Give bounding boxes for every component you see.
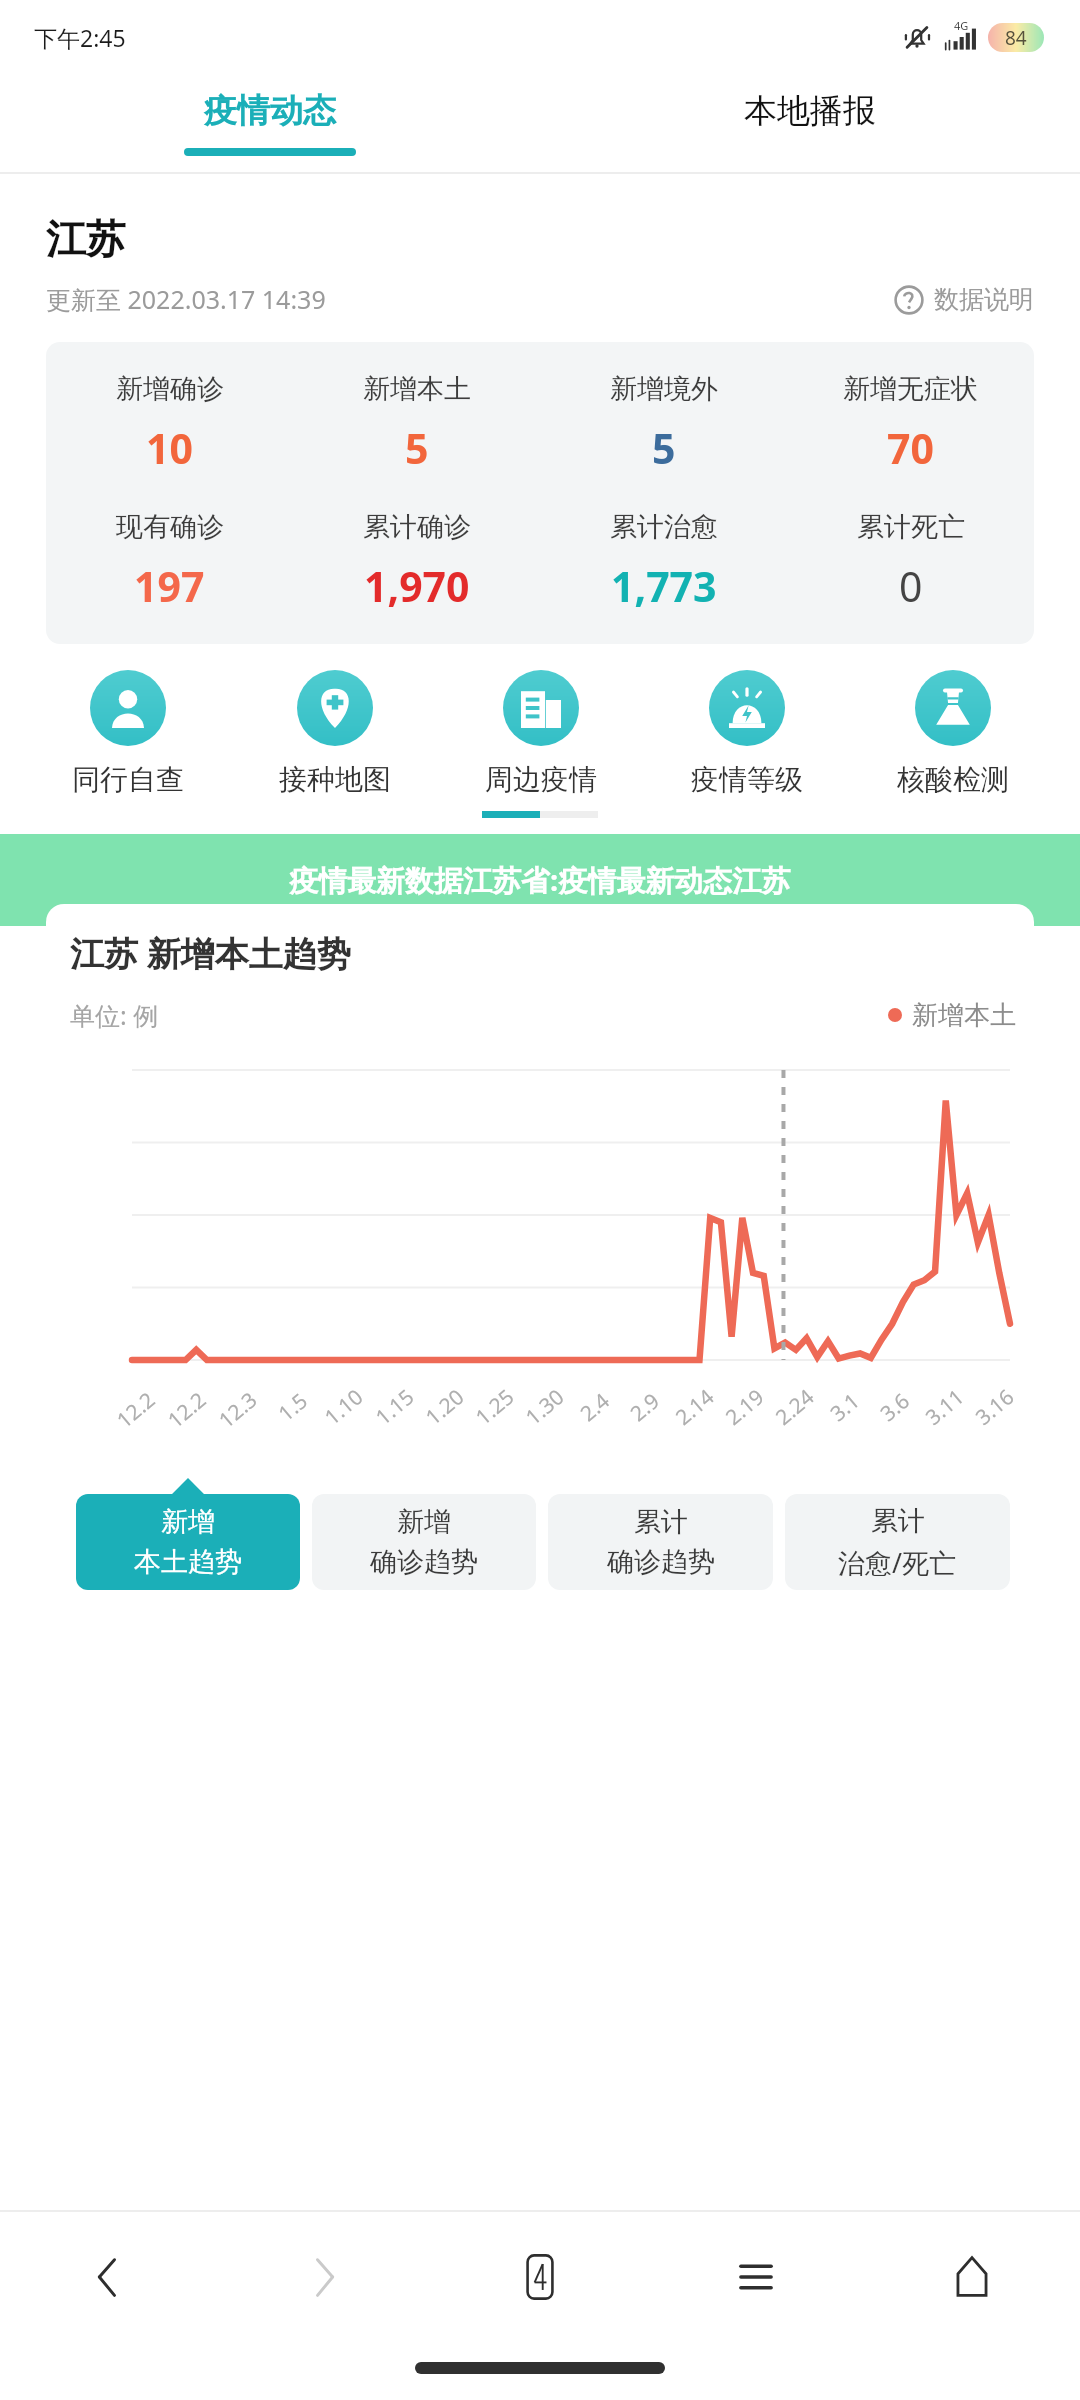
button[interactable]: 新增确诊 — [46, 372, 293, 476]
staticText: 核酸检测 — [897, 762, 1009, 797]
staticText: 下午2:45 — [34, 22, 126, 53]
staticText: 197 — [134, 558, 205, 614]
staticText: 累计治愈 — [610, 510, 718, 544]
staticText: 数据说明 — [934, 284, 1034, 315]
staticText: 确诊趋势 — [607, 1545, 715, 1579]
staticText: 1.20 — [419, 1382, 470, 1432]
button[interactable]: Menu — [648, 2212, 864, 2342]
staticText: 1.10 — [318, 1382, 369, 1432]
staticText: 新增本土 — [363, 372, 471, 406]
staticText: 4G — [954, 18, 969, 33]
staticText: 新增本土 — [912, 999, 1016, 1032]
staticText: 3.16 — [969, 1382, 1020, 1432]
staticText: 3.1 — [824, 1386, 866, 1428]
staticText: 新增无症状 — [843, 372, 978, 406]
staticText: 0 — [899, 558, 923, 614]
button[interactable]: 累计 — [548, 1494, 773, 1590]
button[interactable]: 新增 — [312, 1494, 536, 1590]
staticText: 1,970 — [364, 558, 470, 614]
staticText: 10 — [146, 420, 193, 476]
button[interactable]: 累计确诊 — [293, 510, 540, 614]
staticText: 现有确诊 — [116, 510, 224, 544]
staticText: 确诊趋势 — [370, 1545, 478, 1579]
button[interactable]: Forward — [216, 2212, 432, 2342]
staticText: 12.21 — [110, 1380, 168, 1435]
staticText: 3.11 — [919, 1382, 970, 1432]
staticText: 2.19 — [719, 1382, 770, 1432]
staticText: 新增 — [397, 1505, 451, 1539]
staticText: 1.15 — [369, 1382, 420, 1432]
staticText: 江苏 新增本土趋势 — [70, 930, 351, 976]
staticText: 累计 — [634, 1505, 688, 1539]
button[interactable]: 现有确诊 — [46, 510, 293, 614]
staticText: 2.4 — [574, 1386, 616, 1428]
staticText: 新增确诊 — [116, 372, 224, 406]
button[interactable]: 新增本土 — [293, 372, 540, 476]
staticText: 12.31 — [212, 1380, 270, 1435]
staticText: 2.9 — [624, 1386, 666, 1428]
staticText: 新增境外 — [610, 372, 718, 406]
staticText: 1.25 — [469, 1382, 520, 1432]
staticText: 84 — [1005, 25, 1027, 51]
button[interactable]: 疫情动态 — [0, 74, 540, 172]
staticText: 5 — [405, 420, 429, 476]
button[interactable]: 核酸检测 — [850, 670, 1056, 797]
staticText: 接种地图 — [279, 762, 391, 797]
staticText: 同行自查 — [72, 762, 184, 797]
button[interactable]: 新增 — [76, 1494, 300, 1590]
button[interactable]: Tabs — [432, 2212, 648, 2342]
button[interactable]: 本地播报 — [540, 74, 1080, 172]
staticText: 1.5 — [272, 1386, 314, 1428]
staticText: 累计 — [871, 1504, 925, 1538]
staticText: 周边疫情 — [485, 762, 597, 797]
staticText: 70 — [887, 420, 934, 476]
button[interactable]: 疫情等级 — [644, 670, 850, 797]
button[interactable]: 新增境外 — [540, 372, 787, 476]
staticText: 江苏 — [46, 214, 126, 264]
button[interactable]: 累计治愈 — [540, 510, 787, 614]
staticText: 本地播报 — [744, 90, 876, 132]
staticText: 3.6 — [874, 1386, 916, 1428]
staticText: 2.14 — [669, 1382, 720, 1432]
button[interactable]: 累计死亡 — [787, 510, 1034, 614]
staticText: 疫情动态 — [204, 90, 336, 132]
button[interactable]: 新增无症状 — [787, 372, 1034, 476]
staticText: 本土趋势 — [134, 1545, 242, 1579]
button[interactable]: Back — [0, 2212, 216, 2342]
button[interactable]: 数据说明 — [894, 284, 1034, 315]
staticText: 5 — [652, 420, 676, 476]
staticText: 新增 — [161, 1505, 215, 1539]
button[interactable]: 周边疫情 — [438, 670, 644, 797]
staticText: 1.30 — [519, 1382, 570, 1432]
button[interactable]: 接种地图 — [231, 670, 438, 797]
button[interactable]: 累计 — [785, 1494, 1010, 1590]
staticText: 12.26 — [161, 1380, 219, 1435]
staticText: 治愈/死亡 — [838, 1544, 957, 1581]
staticText: 单位: 例 — [70, 998, 159, 1032]
staticText: 更新至 2022.03.17 14:39 — [46, 282, 326, 316]
button[interactable]: 同行自查 — [24, 670, 231, 797]
staticText: 2.24 — [769, 1382, 820, 1432]
staticText: 累计死亡 — [857, 510, 965, 544]
staticText: 累计确诊 — [363, 510, 471, 544]
staticText: 疫情等级 — [691, 762, 803, 797]
staticText: 疫情最新数据江苏省:疫情最新动态江苏 — [289, 860, 791, 900]
staticText: 1,773 — [611, 558, 717, 614]
button[interactable]: Home — [864, 2212, 1080, 2342]
